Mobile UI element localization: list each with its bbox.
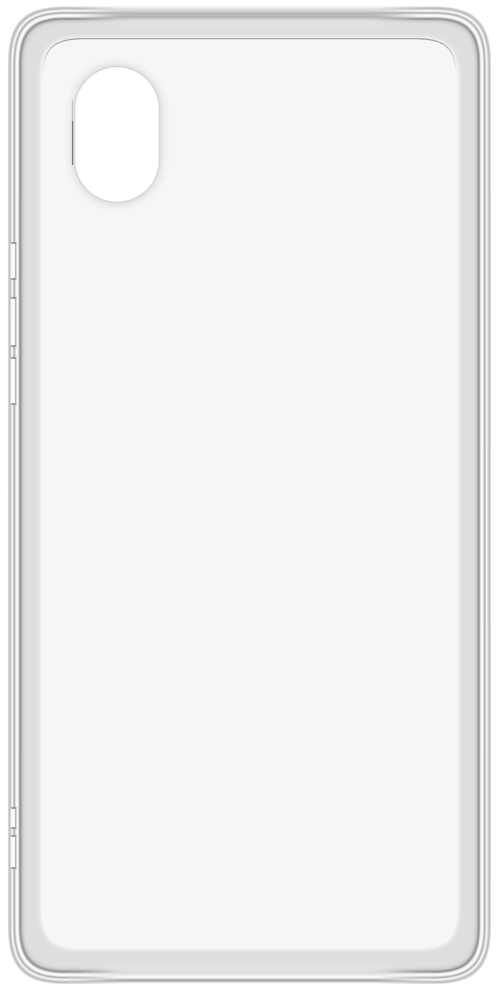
button[interactable]: Clear protective phone case, back view [0, 0, 501, 1000]
